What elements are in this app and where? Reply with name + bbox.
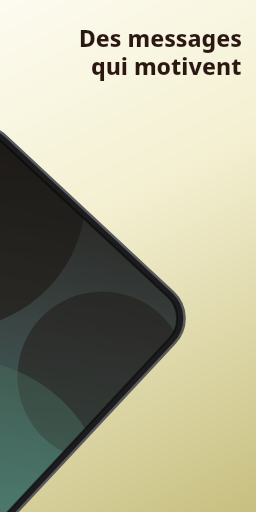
button[interactable]: Download <box>116 398 150 432</box>
button[interactable]: Change colour <box>82 430 116 464</box>
button[interactable]: Favourite <box>150 365 184 399</box>
